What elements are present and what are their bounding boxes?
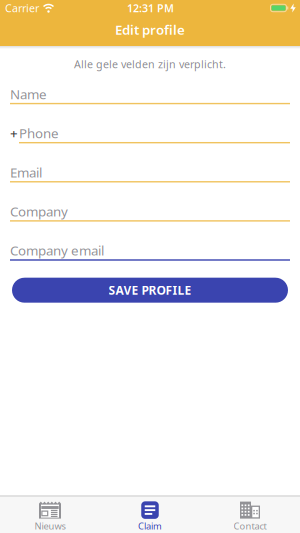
button[interactable]: + xyxy=(0,124,300,143)
staticText: Carrier xyxy=(5,1,39,15)
staticText: + xyxy=(10,124,18,142)
button[interactable]: SAVE PROFILE xyxy=(12,278,288,303)
button[interactable]: Email xyxy=(0,163,300,182)
button[interactable]: Company xyxy=(0,202,300,222)
staticText: Nieuws xyxy=(34,520,65,532)
button[interactable]: Company email xyxy=(0,242,300,261)
staticText: Alle gele velden zijn verplicht. xyxy=(74,57,226,71)
button[interactable]: Claim xyxy=(100,502,200,532)
button[interactable]: Nieuws xyxy=(0,502,100,532)
staticText: Contact xyxy=(233,520,266,532)
staticText: Company xyxy=(10,202,68,220)
staticText: Company email xyxy=(10,242,104,259)
button[interactable]: Name xyxy=(0,85,300,104)
staticText: Phone xyxy=(19,124,59,142)
staticText: 12:31 PM xyxy=(127,1,174,15)
staticText: Edit profile xyxy=(115,21,185,38)
staticText: Claim xyxy=(138,520,162,532)
staticText: Email xyxy=(10,163,42,181)
staticText: SAVE PROFILE xyxy=(108,282,191,298)
staticText: Name xyxy=(10,85,47,103)
button[interactable]: Contact xyxy=(200,502,300,532)
